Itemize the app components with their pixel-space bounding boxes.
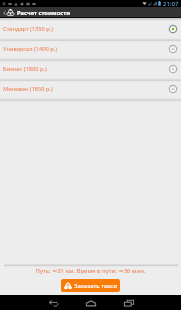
button[interactable]: Home	[72, 295, 110, 310]
button[interactable]: Back	[2, 7, 6, 18]
staticText: Бизнес (1800 р.)	[3, 65, 47, 73]
button[interactable]: Back	[34, 295, 72, 310]
staticText: Минивэн (1850 р.)	[3, 85, 53, 93]
button[interactable]: Бизнес (1800 р.)	[0, 59, 181, 79]
staticText: Путь: ≈31 км. Время в пути: ≈36 мин.	[0, 267, 181, 275]
staticText: Стандарт (1350 р.)	[3, 25, 53, 33]
button[interactable]: Заказать такси	[61, 279, 120, 292]
staticText: Заказать такси	[74, 282, 117, 290]
staticText: Расчет стоимости	[17, 9, 71, 17]
staticText: Универсал (1400 р.)	[3, 45, 57, 53]
button[interactable]: Минивэн (1850 р.)	[0, 79, 181, 99]
button[interactable]: Recent apps	[110, 295, 148, 310]
staticText: 21:07	[163, 0, 179, 7]
button[interactable]: Универсал (1400 р.)	[0, 39, 181, 59]
button[interactable]: Стандарт (1350 р.)	[0, 19, 181, 39]
